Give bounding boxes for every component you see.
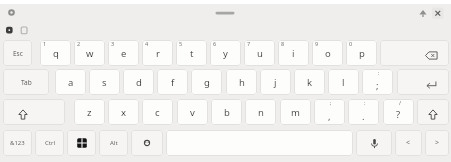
button[interactable]: 4 [142, 40, 173, 66]
staticText: u [257, 47, 263, 60]
staticText: o [325, 47, 331, 60]
staticText: w [86, 47, 94, 60]
staticText: Alt [110, 139, 118, 147]
button[interactable]: 7 [244, 40, 275, 66]
button[interactable]: l [328, 69, 359, 95]
staticText: f [171, 76, 175, 89]
button[interactable]: n [245, 99, 276, 125]
staticText: x [121, 106, 127, 119]
button[interactable]: 9 [312, 40, 343, 66]
staticText: 5 [179, 40, 183, 47]
staticText: > [435, 138, 440, 148]
button[interactable]: Ctrl [35, 130, 64, 156]
staticText: i [292, 47, 295, 60]
button[interactable]: 2 [74, 40, 105, 66]
button[interactable]: Esc [3, 40, 32, 66]
staticText: : [364, 99, 366, 106]
staticText: < [406, 138, 411, 148]
button[interactable] [380, 40, 449, 66]
button[interactable]: c [142, 99, 173, 125]
staticText: j [274, 76, 277, 89]
staticText: ; [330, 99, 332, 106]
button[interactable] [417, 99, 449, 125]
staticText: c [155, 106, 160, 119]
button[interactable]: x [108, 99, 139, 125]
staticText: n [258, 106, 264, 119]
staticText: b [224, 106, 230, 119]
button[interactable] [356, 130, 392, 156]
button[interactable]: / [383, 99, 414, 125]
button[interactable]: k [294, 69, 325, 95]
staticText: 2 [77, 40, 81, 47]
button[interactable]: 3 [108, 40, 139, 66]
staticText: h [239, 76, 245, 89]
button[interactable]: < [395, 130, 422, 156]
staticText: 4 [145, 40, 149, 47]
staticText: 6 [213, 40, 217, 47]
button[interactable]: Tab [3, 69, 49, 95]
staticText: ? [396, 108, 401, 121]
staticText: &123 [10, 139, 25, 147]
staticText: v [190, 106, 195, 119]
button[interactable] [67, 130, 96, 156]
staticText: ; [376, 79, 379, 92]
button[interactable]: h [226, 69, 257, 95]
staticText: Esc [13, 49, 23, 58]
button[interactable]: : [362, 69, 393, 95]
staticText: z [87, 106, 92, 119]
staticText: a [68, 76, 74, 89]
staticText: 0 [349, 40, 353, 47]
staticText: s [102, 76, 107, 89]
button[interactable]: v [177, 99, 208, 125]
button[interactable]: 1 [40, 40, 71, 66]
button[interactable]: 6 [210, 40, 241, 66]
staticText: : [378, 69, 380, 76]
staticText: q [53, 47, 59, 60]
button[interactable]: j [260, 69, 291, 95]
button[interactable]: m [280, 99, 311, 125]
staticText: e [121, 47, 127, 60]
button[interactable]: &123 [3, 130, 32, 156]
staticText: l [342, 76, 345, 89]
button[interactable]: > [425, 130, 449, 156]
button[interactable]: s [89, 69, 120, 95]
staticText: 8 [281, 40, 285, 47]
button[interactable]: f [157, 69, 188, 95]
button[interactable] [131, 130, 163, 156]
staticText: 3 [111, 40, 115, 47]
staticText: , [328, 110, 331, 123]
staticText: y [223, 47, 228, 60]
button[interactable]: d [123, 69, 154, 95]
staticText: k [307, 76, 313, 89]
button[interactable]: : [348, 99, 379, 125]
staticText: Tab [21, 78, 32, 87]
button[interactable]: 8 [278, 40, 309, 66]
button[interactable]: Alt [99, 130, 128, 156]
button[interactable]: ; [314, 99, 345, 125]
button[interactable]: z [74, 99, 105, 125]
staticText: Ctrl [45, 139, 55, 147]
staticText: t [190, 47, 194, 60]
staticText: 9 [315, 40, 319, 47]
staticText: g [204, 76, 210, 89]
button[interactable]: g [191, 69, 222, 95]
staticText: d [136, 76, 142, 89]
staticText: / [399, 99, 402, 106]
button[interactable]: a [55, 69, 86, 95]
button[interactable]: 5 [176, 40, 207, 66]
button[interactable]: 0 [346, 40, 377, 66]
staticText: 7 [247, 40, 251, 47]
staticText: r [156, 47, 160, 60]
button[interactable]: b [211, 99, 242, 125]
button[interactable] [3, 99, 65, 125]
staticText: m [291, 106, 300, 119]
staticText: 1 [43, 40, 47, 47]
button[interactable] [166, 130, 353, 156]
staticText: p [359, 47, 365, 60]
staticText: . [362, 110, 365, 123]
button[interactable] [397, 69, 449, 95]
